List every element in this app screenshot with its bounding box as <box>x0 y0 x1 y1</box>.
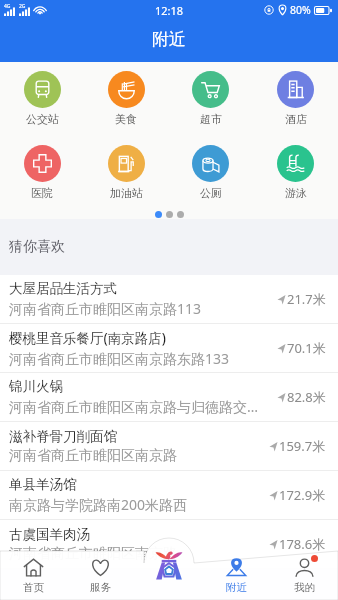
staticText: 古虞国羊肉汤 <box>9 526 90 543</box>
staticText: 锦川火锅 <box>9 378 63 395</box>
staticText: 滋补脊骨刀削面馆 <box>9 428 117 445</box>
staticText: 加油站 <box>110 186 143 200</box>
staticText: 4G <box>4 3 11 10</box>
button[interactable]: 美食 <box>84 71 168 126</box>
button[interactable]: 滋补脊骨刀削面馆 <box>0 422 338 471</box>
button[interactable]: 游泳 <box>253 145 338 200</box>
button[interactable]: 公厕 <box>168 145 253 200</box>
staticText: 医院 <box>31 186 53 200</box>
button[interactable]: 公交站 <box>0 71 84 126</box>
staticText: 12:18 <box>155 3 184 18</box>
button[interactable]: 大屋居品生活方式 <box>0 275 338 324</box>
button[interactable]: 加油站 <box>84 145 168 200</box>
button[interactable]: 酒店 <box>253 71 338 126</box>
button[interactable]: 附近 <box>202 554 270 597</box>
staticText: 河南省商丘市睢阳区南京路 <box>9 447 177 465</box>
staticText: 樱桃里音乐餐厅(南京路店) <box>9 329 166 347</box>
staticText: 公交站 <box>26 112 59 126</box>
staticText: 70.1米 <box>287 339 326 357</box>
staticText: 河南省商丘市睢阳区南京路与归德路交… <box>9 397 259 416</box>
staticText: 2G <box>19 3 26 10</box>
staticText: 南京路与学院路南200米路西 <box>9 495 188 514</box>
staticText: 超市 <box>200 112 222 126</box>
staticText: 河南省商丘市睢阳区南京路113 <box>9 299 202 318</box>
staticText: 河南省商丘市睢阳区南京路东路133 <box>9 349 230 368</box>
button[interactable]: 超市 <box>168 71 253 126</box>
button[interactable]: Logo <box>147 543 191 587</box>
staticText: 21.7米 <box>287 290 326 308</box>
staticText: 附近 <box>226 581 247 594</box>
staticText: 河南省商丘市睢阳区南京路 <box>9 545 177 563</box>
staticText: 159.7米 <box>279 437 326 455</box>
staticText: 172.9米 <box>279 486 326 504</box>
staticText: 单县羊汤馆 <box>9 476 77 493</box>
button[interactable]: 单县羊汤馆 <box>0 471 338 520</box>
staticText: 82.8米 <box>287 388 326 406</box>
button[interactable]: 首页 <box>0 554 67 597</box>
staticText: 178.6米 <box>279 535 326 553</box>
staticText: 首页 <box>23 581 44 594</box>
button[interactable]: 锦川火锅 <box>0 373 338 422</box>
staticText: 我的 <box>294 581 315 594</box>
button[interactable]: 古虞国羊肉汤 <box>0 520 338 569</box>
staticText: 80% <box>290 3 311 17</box>
staticText: 大屋居品生活方式 <box>9 280 117 297</box>
staticText: 服务 <box>90 581 111 594</box>
staticText: 附近 <box>152 29 186 50</box>
staticText: 公厕 <box>200 186 222 200</box>
button[interactable]: 服务 <box>67 554 134 597</box>
button[interactable]: 樱桃里音乐餐厅(南京路店) <box>0 324 338 373</box>
staticText: 猜你喜欢 <box>9 238 65 256</box>
staticText: 酒店 <box>285 112 307 126</box>
staticText: 美食 <box>115 112 137 126</box>
button[interactable]: 医院 <box>0 145 84 200</box>
staticText: 游泳 <box>285 186 307 200</box>
button[interactable]: 我的 <box>270 554 338 597</box>
